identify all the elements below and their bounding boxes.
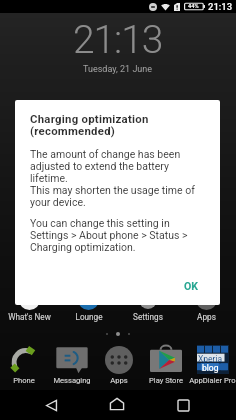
staticText: What's New xyxy=(8,312,51,322)
staticText: The amount of change has been adjusted t… xyxy=(30,148,195,208)
button[interactable]: Back xyxy=(31,390,71,420)
staticText: Play Store xyxy=(149,376,183,385)
staticText: 21:13 xyxy=(73,17,163,63)
staticText: Apps xyxy=(197,312,216,322)
button[interactable]: Lounge xyxy=(59,289,118,322)
button[interactable]: Home xyxy=(97,389,137,419)
button[interactable]: Apps xyxy=(177,289,236,322)
staticText: Apps xyxy=(110,376,128,385)
button[interactable]: Apps xyxy=(95,345,142,385)
staticText: You can change this setting in Settings … xyxy=(30,217,188,253)
button[interactable]: Play Store xyxy=(142,345,189,385)
staticText: Xperia xyxy=(198,354,223,364)
button[interactable]: Phone xyxy=(0,345,48,385)
staticText: Tuesday, 21 June xyxy=(83,64,153,75)
button[interactable]: Messaging xyxy=(48,345,95,385)
button[interactable]: Settings xyxy=(118,289,177,322)
staticText: Lounge xyxy=(75,312,103,322)
staticText: 44% xyxy=(188,3,199,10)
button[interactable]: 21:13 xyxy=(0,17,236,75)
staticText: Settings xyxy=(133,312,163,322)
staticText: Phone xyxy=(13,376,35,385)
button[interactable]: What's New xyxy=(0,289,59,322)
staticText: OK xyxy=(184,280,199,292)
staticText: blog xyxy=(202,363,219,373)
staticText: AppDialer Pro xyxy=(189,376,236,385)
staticText: Charging optimization (recommended) xyxy=(30,112,149,138)
button[interactable]: Xperia xyxy=(189,345,236,385)
staticText: 21:13 xyxy=(208,1,233,12)
staticText: Messaging xyxy=(53,376,91,385)
button[interactable]: OK xyxy=(178,276,205,296)
button[interactable]: Recent apps xyxy=(163,390,203,420)
